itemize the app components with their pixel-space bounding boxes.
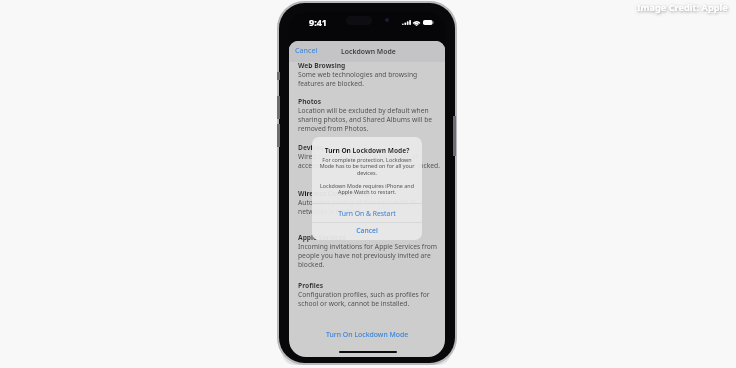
staticText: Configuration profiles, such as profiles… bbox=[298, 290, 441, 308]
staticText: Devices bbox=[298, 143, 324, 152]
staticText: Lockdown Mode requires iPhone and Apple … bbox=[319, 182, 415, 196]
staticText: Incoming invitations for Apple Services … bbox=[298, 242, 441, 269]
staticText: Some web technologies and browsing featu… bbox=[298, 70, 441, 88]
staticText: 9:41 bbox=[309, 16, 327, 28]
staticText: Cancel bbox=[312, 226, 422, 235]
staticText: Profiles bbox=[298, 281, 324, 290]
staticText: Cancel bbox=[295, 45, 318, 55]
staticText: Wireless Connectivity bbox=[298, 189, 370, 198]
button[interactable]: Cancel bbox=[291, 42, 322, 58]
staticText: Image Credit: Apple bbox=[637, 1, 728, 14]
button[interactable]: Cancel bbox=[312, 222, 422, 238]
button[interactable]: Turn On Lockdown Mode bbox=[289, 327, 445, 342]
button[interactable]: Turn On & Restart bbox=[312, 204, 422, 222]
staticText: Location will be excluded by default whe… bbox=[298, 106, 441, 133]
staticText: Web Browsing bbox=[298, 61, 346, 70]
staticText: Wired connections with a computer or acc… bbox=[298, 152, 441, 170]
staticText: Turn On Lockdown Mode? bbox=[312, 146, 422, 155]
staticText: Lockdown Mode bbox=[341, 47, 396, 56]
staticText: Apple Services bbox=[298, 233, 347, 242]
staticText: For complete protection, Lockdown Mode h… bbox=[318, 156, 416, 177]
staticText: Turn On & Restart bbox=[312, 209, 422, 218]
staticText: Turn On Lockdown Mode bbox=[326, 330, 409, 339]
staticText: Photos bbox=[298, 97, 322, 106]
staticText: Automatic joining of non-secure Wi-Fi ne… bbox=[298, 198, 441, 216]
